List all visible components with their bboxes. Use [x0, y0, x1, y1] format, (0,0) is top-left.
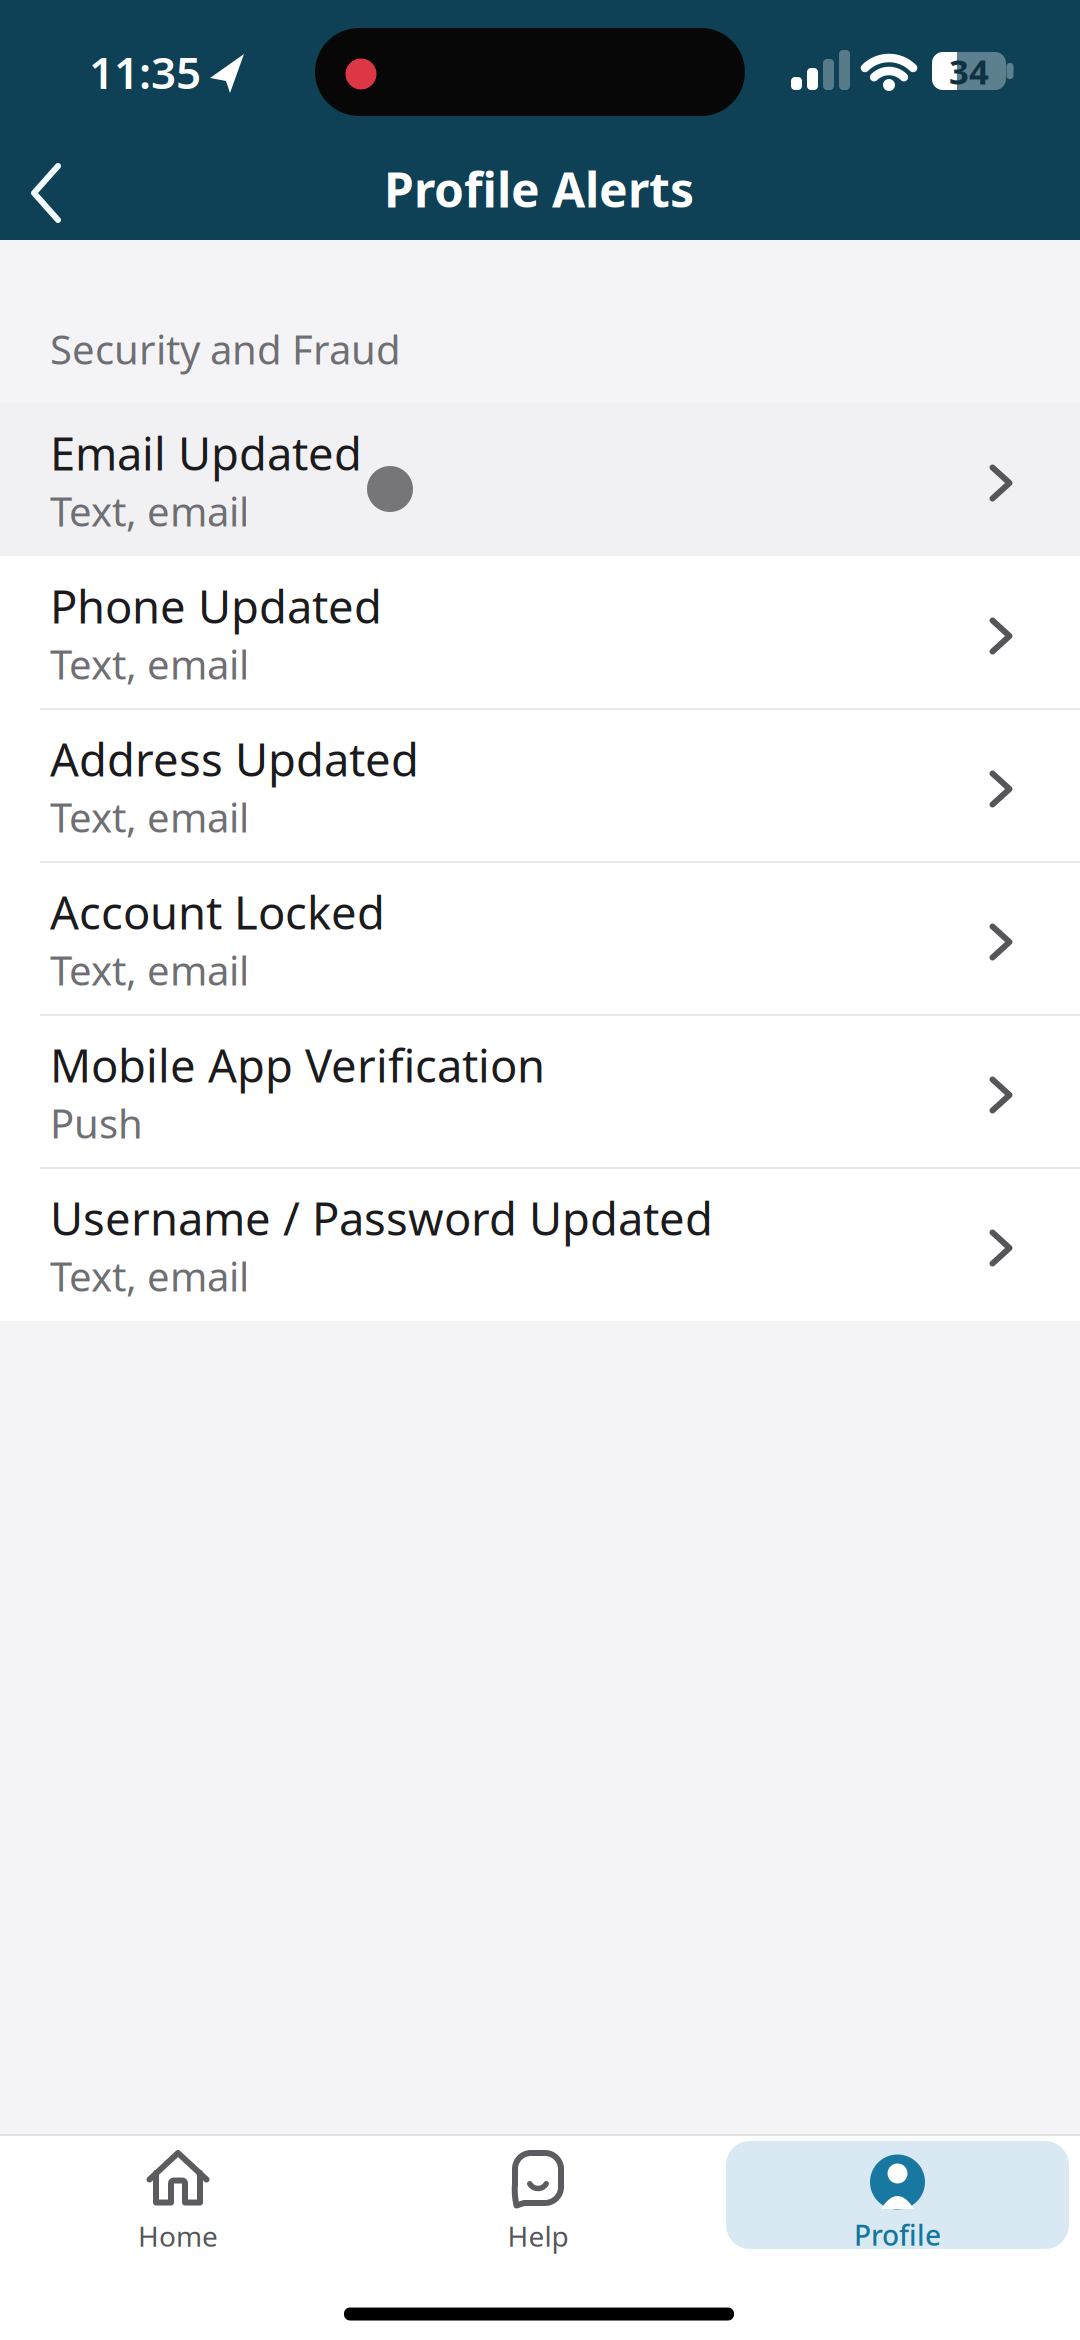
button[interactable]: Account Locked	[0, 862, 1080, 1015]
staticText: Profile	[854, 2216, 941, 2254]
staticText: Text, email	[50, 943, 249, 996]
button[interactable]: Address Updated	[0, 709, 1080, 862]
staticText: Help	[507, 2217, 568, 2255]
button[interactable]: Mobile App Verification	[0, 1015, 1080, 1168]
staticText: Address Updated	[50, 729, 419, 789]
button[interactable]: Email Updated	[0, 403, 1080, 556]
staticText: Email Updated	[50, 423, 362, 483]
staticText: Phone Updated	[50, 576, 382, 636]
staticText: Mobile App Verification	[50, 1035, 545, 1095]
staticText: 34	[949, 48, 989, 94]
staticText: Account Locked	[50, 882, 385, 942]
staticText: Text, email	[50, 1249, 249, 1302]
staticText: Push	[50, 1096, 143, 1149]
button[interactable]: Back	[0, 136, 110, 250]
staticText: Text, email	[50, 484, 249, 537]
staticText: Username / Password Updated	[50, 1188, 713, 1248]
staticText: 11:35	[89, 43, 201, 101]
staticText: Profile Alerts	[384, 157, 694, 221]
button[interactable]: Help	[418, 2127, 658, 2277]
button[interactable]: Home	[58, 2127, 298, 2277]
button[interactable]: Username / Password Updated	[0, 1168, 1080, 1321]
button[interactable]: Phone Updated	[0, 556, 1080, 709]
staticText: Home	[138, 2217, 218, 2255]
button[interactable]: Profile	[726, 2141, 1069, 2249]
staticText: Text, email	[50, 790, 249, 843]
staticText: Security and Fraud	[50, 322, 401, 375]
staticText: Text, email	[50, 637, 249, 690]
